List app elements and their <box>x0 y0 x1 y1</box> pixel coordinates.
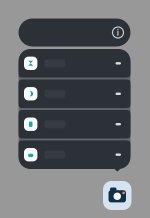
button[interactable] <box>18 140 130 169</box>
button[interactable]: Info <box>108 23 127 42</box>
button[interactable]: Camera <box>103 181 131 210</box>
button[interactable]: i <box>18 18 130 46</box>
button[interactable] <box>18 79 130 108</box>
staticText: i <box>116 26 119 38</box>
button[interactable] <box>18 49 130 78</box>
button[interactable] <box>18 110 130 138</box>
